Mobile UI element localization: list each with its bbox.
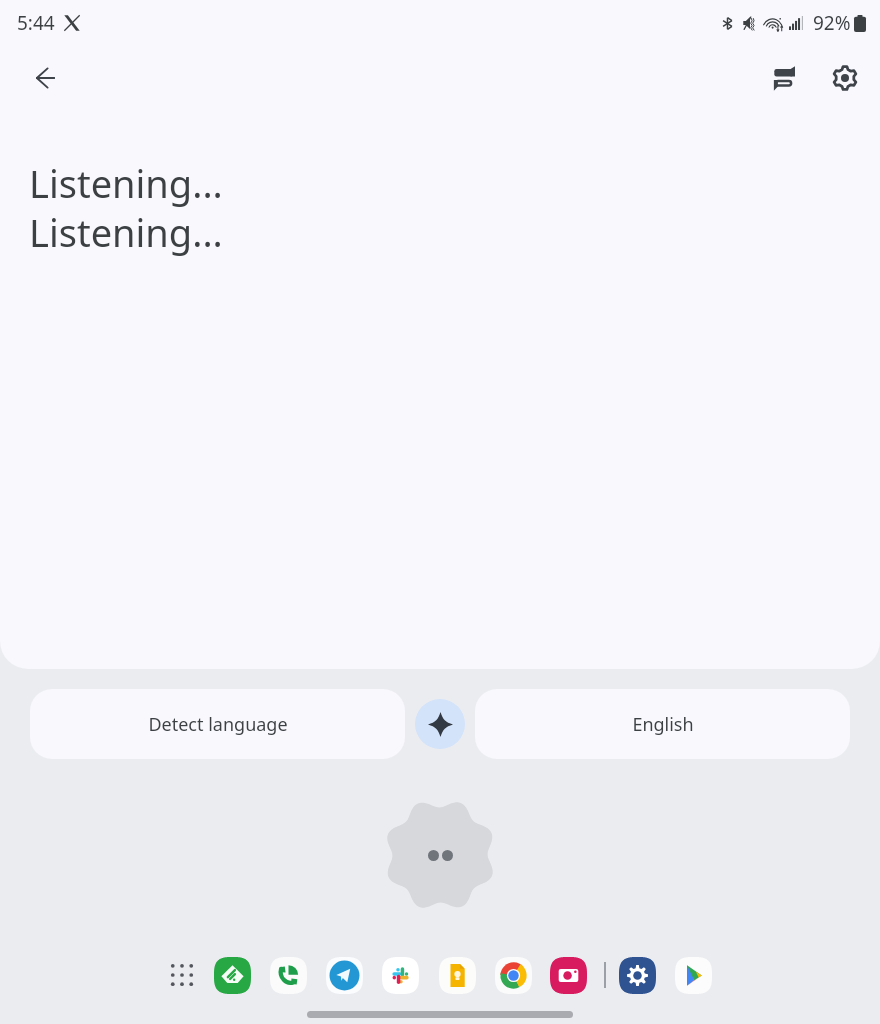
staticText: 5:44 — [17, 10, 55, 36]
button[interactable]: All apps — [160, 953, 204, 997]
button[interactable]: Microphone — [384, 799, 496, 911]
button[interactable]: Slack — [378, 953, 422, 997]
staticText: English — [632, 712, 694, 737]
button[interactable]: Feedly — [210, 953, 254, 997]
button[interactable]: Camera — [546, 953, 590, 997]
button[interactable]: Back — [22, 55, 68, 101]
button[interactable]: Settings — [821, 54, 869, 102]
staticText: Detect language — [148, 712, 288, 737]
button[interactable]: Conversation mode — [760, 54, 808, 102]
staticText: 92% — [813, 10, 851, 36]
staticText: Listening... Listening... — [29, 157, 223, 258]
button[interactable]: Play Store — [671, 953, 715, 997]
button[interactable]: Settings — [615, 953, 659, 997]
button[interactable]: Telegram — [322, 953, 366, 997]
button[interactable]: Phone — [266, 953, 310, 997]
button[interactable]: Chrome — [491, 953, 535, 997]
button[interactable]: English — [475, 689, 850, 759]
button[interactable]: Keep Notes — [435, 953, 479, 997]
button[interactable]: Translate — [415, 699, 465, 749]
button[interactable]: Detect language — [30, 689, 405, 759]
